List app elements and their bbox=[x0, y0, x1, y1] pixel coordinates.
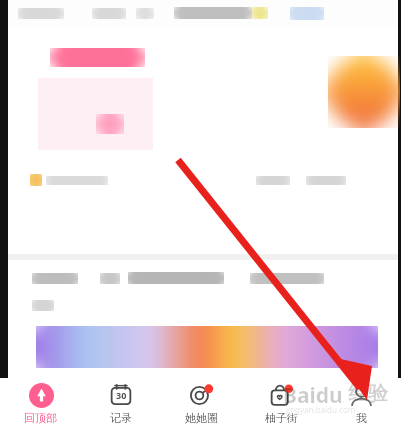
other: 回顶部 Back to top bbox=[29, 383, 54, 408]
staticText: 经验 bbox=[348, 381, 388, 406]
staticText: 30 bbox=[116, 389, 127, 401]
other: 柚子街 Shop bbox=[268, 382, 294, 408]
staticText: 柚子街 bbox=[265, 411, 298, 425]
staticText: jingyan.baidu.com bbox=[286, 404, 356, 415]
staticText: 回顶部 bbox=[24, 411, 57, 425]
button[interactable]: 记录 Records bbox=[81, 378, 161, 429]
staticText: 记录 bbox=[110, 411, 132, 425]
other: 记录 Records bbox=[109, 383, 133, 407]
button[interactable]: 回顶部 Back to top bbox=[0, 378, 81, 429]
button[interactable]: 她她圈 Circle bbox=[161, 378, 241, 429]
button[interactable]: 柚子街 Shop bbox=[241, 378, 321, 429]
staticText: Baidu bbox=[283, 381, 343, 410]
staticText: 她她圈 bbox=[185, 411, 218, 425]
other: 我 Me bbox=[349, 383, 374, 408]
staticText: 我 bbox=[356, 411, 367, 425]
button[interactable]: 我 Me bbox=[321, 378, 401, 429]
other: 她她圈 Circle bbox=[188, 382, 214, 408]
